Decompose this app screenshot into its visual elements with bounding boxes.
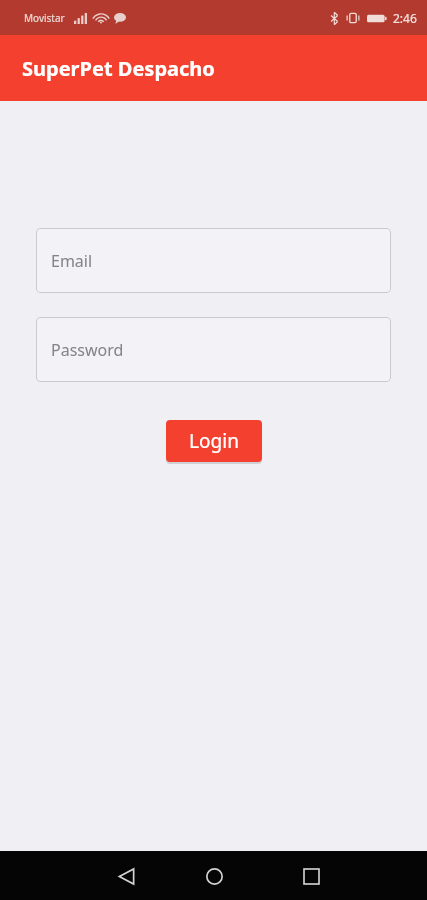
staticText: SuperPet Despacho (22, 55, 215, 82)
staticText: Login (189, 428, 239, 454)
button[interactable]: Back (106, 856, 146, 896)
staticText: Movistar (24, 11, 65, 25)
button[interactable]: Login (166, 420, 262, 462)
staticText: 2:46 (393, 10, 417, 26)
button[interactable]: Home (194, 856, 234, 896)
button[interactable]: Email (36, 228, 391, 293)
staticText: Password (51, 339, 124, 361)
button[interactable]: Recent apps (291, 856, 331, 896)
button[interactable]: Password (36, 317, 391, 382)
staticText: Email (51, 250, 93, 272)
